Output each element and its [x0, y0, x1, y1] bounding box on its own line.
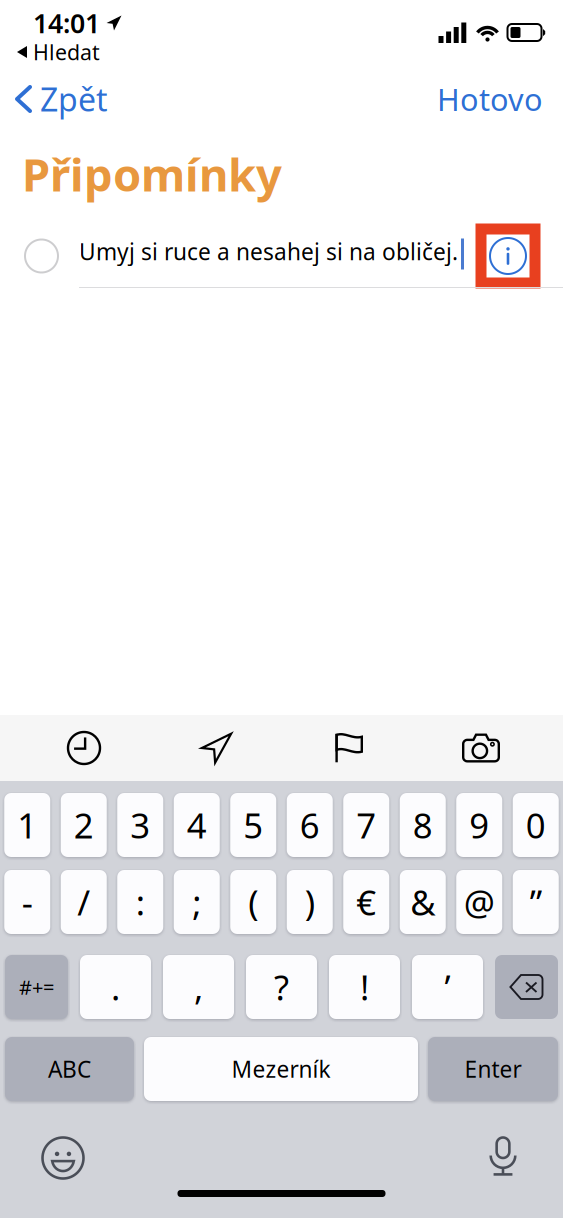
- staticText: 9: [469, 802, 489, 848]
- staticText: -: [22, 879, 33, 925]
- button[interactable]: -: [4, 870, 50, 934]
- button[interactable]: 5: [230, 793, 276, 857]
- staticText: Mezerník: [231, 1054, 330, 1084]
- button[interactable]: Set location: [150, 715, 283, 781]
- button[interactable]: Zpět: [0, 68, 122, 129]
- staticText: .: [111, 964, 120, 1010]
- staticText: ’: [444, 964, 450, 1010]
- button[interactable]: Flag: [283, 715, 415, 781]
- staticText: Hotovo: [437, 79, 543, 119]
- button[interactable]: 4: [174, 793, 220, 857]
- button[interactable]: Enter: [428, 1037, 558, 1101]
- button[interactable]: 8: [400, 793, 446, 857]
- staticText: ,: [194, 964, 203, 1010]
- staticText: Zpět: [40, 78, 108, 120]
- staticText: 4: [187, 802, 207, 848]
- staticText: ”: [530, 879, 542, 925]
- staticText: !: [360, 964, 369, 1010]
- staticText: Enter: [464, 1054, 521, 1084]
- button[interactable]: ): [287, 870, 333, 934]
- button[interactable]: Details: [481, 229, 535, 283]
- staticText: 7: [356, 802, 376, 848]
- button[interactable]: #+=: [5, 955, 68, 1019]
- button[interactable]: 7: [343, 793, 389, 857]
- button[interactable]: /: [61, 870, 107, 934]
- staticText: 8: [413, 802, 433, 848]
- staticText: 1: [17, 802, 37, 848]
- button[interactable]: ?: [246, 955, 317, 1019]
- staticText: (: [248, 879, 258, 925]
- button[interactable]: Hotovo: [417, 68, 563, 129]
- button[interactable]: .: [80, 955, 151, 1019]
- button[interactable]: :: [117, 870, 163, 934]
- button[interactable]: (: [230, 870, 276, 934]
- staticText: @: [464, 879, 495, 925]
- staticText: Připomínky: [22, 144, 282, 204]
- staticText: 5: [243, 802, 263, 848]
- staticText: #+=: [19, 974, 54, 1000]
- staticText: &: [410, 879, 435, 925]
- button[interactable]: 9: [456, 793, 502, 857]
- staticText: ;: [192, 879, 201, 925]
- button[interactable]: ’: [412, 955, 483, 1019]
- button[interactable]: ;: [174, 870, 220, 934]
- button[interactable]: Delete: [495, 955, 558, 1019]
- button[interactable]: Set time: [18, 715, 150, 781]
- button[interactable]: ,: [163, 955, 234, 1019]
- staticText: 2: [74, 802, 94, 848]
- button[interactable]: 1: [4, 793, 50, 857]
- staticText: €: [356, 879, 376, 925]
- staticText: :: [136, 879, 145, 925]
- staticText: 6: [300, 802, 320, 848]
- staticText: ?: [274, 964, 289, 1010]
- staticText: Umyj si ruce a nesahej si na obličej.: [79, 236, 458, 266]
- staticText: /: [77, 879, 90, 925]
- staticText: ): [305, 879, 315, 925]
- button[interactable]: ”: [513, 870, 559, 934]
- staticText: 14:01: [33, 5, 100, 41]
- staticText: 0: [526, 802, 546, 848]
- button[interactable]: Dictation: [475, 1135, 531, 1181]
- staticText: ABC: [48, 1054, 91, 1084]
- button[interactable]: @: [456, 870, 502, 934]
- staticText: Hledat: [33, 38, 100, 66]
- button[interactable]: Emoji: [35, 1135, 91, 1181]
- button[interactable]: 6: [287, 793, 333, 857]
- button[interactable]: 0: [513, 793, 559, 857]
- button[interactable]: €: [343, 870, 389, 934]
- button[interactable]: &: [400, 870, 446, 934]
- button[interactable]: !: [329, 955, 400, 1019]
- button[interactable]: 3: [117, 793, 163, 857]
- button[interactable]: Add photo: [415, 715, 547, 781]
- staticText: 3: [130, 802, 150, 848]
- button[interactable]: Mezerník: [144, 1037, 418, 1101]
- button[interactable]: 2: [61, 793, 107, 857]
- button[interactable]: ABC: [5, 1037, 134, 1101]
